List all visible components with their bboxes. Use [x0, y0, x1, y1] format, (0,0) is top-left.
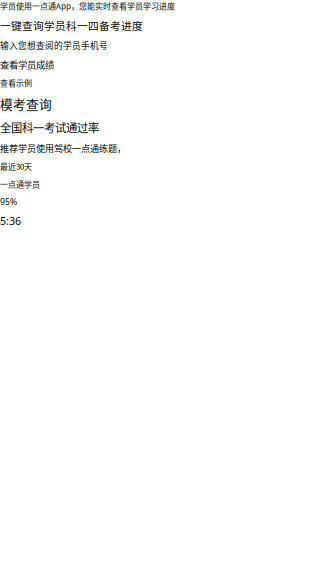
- staticText: 一键查询学员科一四备考进度: [0, 18, 143, 33]
- staticText: 查看学员成绩: [0, 58, 54, 71]
- staticText: 全国科一考试通过率: [0, 119, 99, 135]
- staticText: 一点通学员: [0, 178, 40, 190]
- staticText: 查看示例: [0, 77, 32, 89]
- staticText: 模考查询: [0, 95, 52, 113]
- staticText: 输入您想查阅的学员手机号: [0, 39, 108, 51]
- staticText: 学员使用一点通App，您能实时查看学员学习进度: [0, 0, 175, 12]
- staticText: 95%: [0, 196, 17, 207]
- staticText: 最近30天: [0, 161, 32, 172]
- staticText: 推荐学员使用驾校一点通练题，: [0, 141, 126, 154]
- staticText: 5:36: [0, 213, 21, 228]
